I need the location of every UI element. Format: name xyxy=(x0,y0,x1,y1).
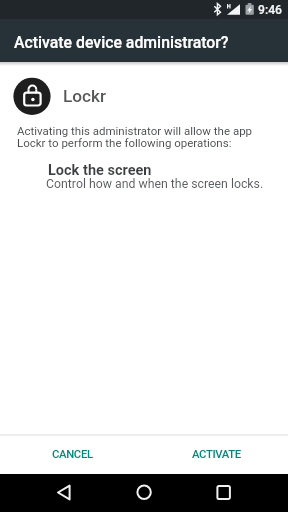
staticText: Lockr to perform the following operation… xyxy=(17,136,232,149)
staticText: 9:46 xyxy=(258,3,283,17)
staticText: Activate device administrator? xyxy=(14,33,229,52)
button[interactable] xyxy=(96,474,192,512)
button[interactable] xyxy=(0,474,96,512)
staticText: ACTIVATE xyxy=(192,448,241,461)
button[interactable] xyxy=(192,474,288,512)
button[interactable]: CANCEL xyxy=(32,439,112,469)
button[interactable]: ACTIVATE xyxy=(172,439,260,469)
staticText: Lock the screen xyxy=(48,162,152,179)
staticText: Lockr xyxy=(63,86,107,106)
staticText: Activating this administrator will allow… xyxy=(17,124,253,137)
staticText: Control how and when the screen locks. xyxy=(46,177,264,191)
staticText: CANCEL xyxy=(52,448,93,461)
